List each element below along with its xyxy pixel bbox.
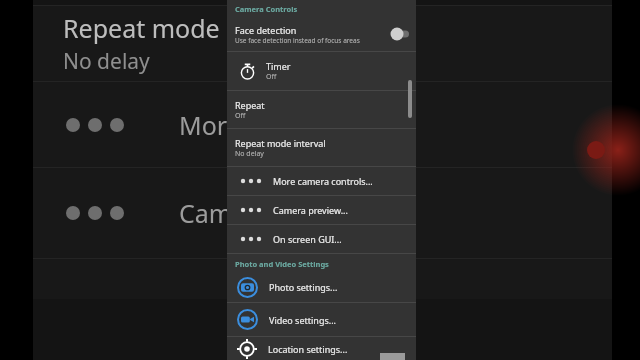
staticText: Use face detection instead of focus area… — [235, 36, 360, 45]
button[interactable]: Repeat — [227, 91, 416, 128]
staticText: Off — [235, 111, 246, 121]
staticText: Location settings... — [268, 343, 348, 355]
button[interactable]: Timer — [227, 52, 416, 90]
staticText: Camera preview... — [273, 204, 348, 216]
staticText: Came — [179, 196, 247, 230]
button[interactable]: Repeat mode interval — [227, 129, 416, 166]
button[interactable]: Face detection toggle — [389, 28, 411, 40]
staticText: Camera Controls — [235, 4, 298, 14]
staticText: Off — [266, 72, 277, 82]
staticText: Face detection — [235, 24, 297, 36]
staticText: Video settings... — [269, 314, 336, 326]
staticText: Photo settings... — [269, 281, 338, 293]
button[interactable]: More camera controls... — [227, 167, 416, 195]
staticText: Repeat mode interval — [235, 137, 326, 149]
button[interactable]: Location settings... — [227, 337, 416, 360]
button[interactable]: Video settings... — [227, 303, 416, 336]
staticText: Repeat mode — [63, 11, 220, 45]
staticText: Photo and Video Settings — [235, 259, 329, 269]
button[interactable]: On screen GUI... — [227, 225, 416, 253]
staticText: On screen GUI... — [273, 233, 342, 245]
staticText: No delay — [63, 47, 150, 76]
staticText: More — [179, 108, 241, 142]
button[interactable]: Photo settings... — [227, 272, 416, 302]
staticText: Timer — [266, 60, 291, 72]
button[interactable]: Face detection — [227, 17, 416, 51]
button[interactable]: Camera preview... — [227, 196, 416, 224]
staticText: Repeat — [235, 99, 265, 111]
staticText: More camera controls... — [273, 175, 373, 187]
staticText: No delay — [235, 149, 264, 159]
